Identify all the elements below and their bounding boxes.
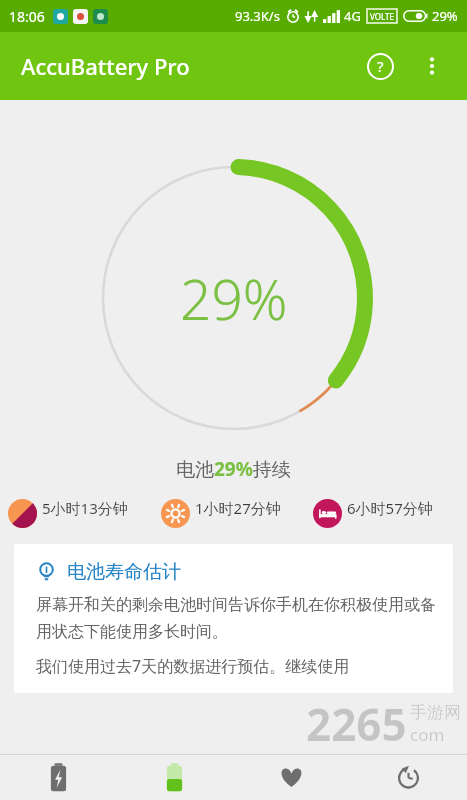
button[interactable]: History (350, 755, 467, 800)
staticText: 18:06 (9, 7, 45, 26)
button[interactable]: Health (233, 755, 350, 800)
staticText: 29% (432, 7, 458, 25)
staticText: 我们使用过去7天的数据进行预估。继续使用 (36, 655, 350, 677)
button[interactable]: Discharging (116, 755, 233, 800)
button[interactable]: Charging (0, 755, 116, 800)
staticText: 5小时13分钟 (42, 498, 155, 518)
button[interactable]: Help (355, 41, 405, 91)
staticText: com (410, 723, 445, 746)
staticText: 电池29%持续 (176, 456, 291, 482)
button[interactable]: 电池寿命估计 (14, 544, 453, 693)
staticText: 4G (344, 7, 361, 25)
staticText: 电池寿命估计 (67, 560, 181, 584)
staticText: 1小时27分钟 (195, 498, 307, 518)
staticText: 2265 (306, 694, 407, 754)
button[interactable]: More options (407, 41, 457, 91)
staticText: 6小时57分钟 (347, 498, 459, 518)
staticText: 29% (180, 261, 288, 336)
button[interactable]: 5小时13分钟 (5, 498, 158, 528)
staticText: 手游网 (410, 702, 461, 723)
staticText: ? (377, 56, 384, 76)
button[interactable]: 1小时27分钟 (158, 498, 310, 528)
staticText: 93.3K/s (235, 7, 280, 25)
button[interactable]: 6小时57分钟 (310, 498, 462, 528)
staticText: 屏幕开和关的剩余电池时间告诉你手机在你积极使用或备用状态下能使用多长时间。 (36, 595, 437, 642)
staticText: VOLTE (370, 11, 394, 22)
staticText: AccuBattery Pro (21, 51, 190, 81)
